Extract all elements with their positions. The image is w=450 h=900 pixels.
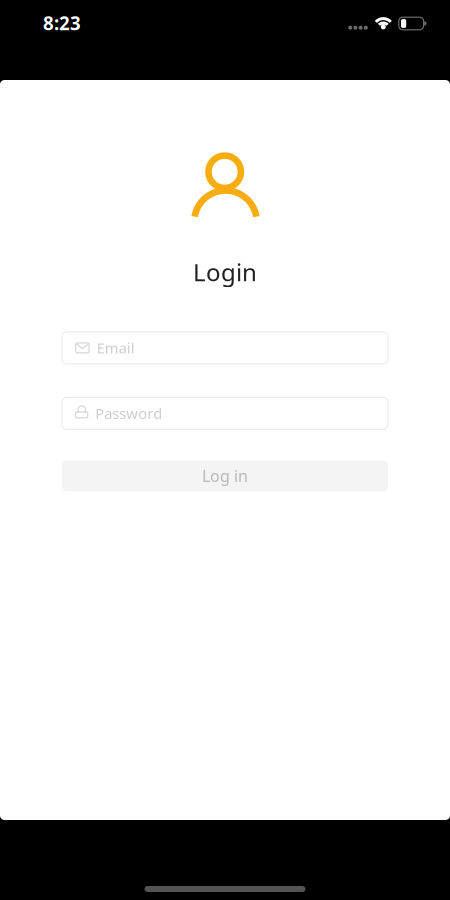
staticText: 8:23 [43, 11, 81, 35]
staticText: Password [95, 404, 162, 423]
staticText: Login [193, 256, 257, 288]
button[interactable]: Password [62, 397, 388, 429]
staticText: Log in [202, 465, 248, 486]
button[interactable]: Log in [62, 460, 388, 491]
staticText: Email [97, 338, 135, 358]
button[interactable]: Email [62, 332, 388, 364]
